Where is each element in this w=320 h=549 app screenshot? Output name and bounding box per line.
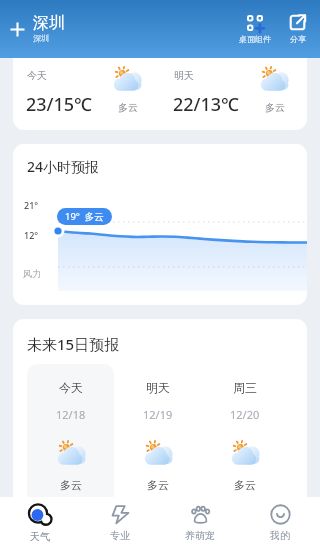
staticText: 22/13℃	[173, 92, 240, 117]
staticText: 深圳	[33, 13, 65, 33]
staticText: 天气	[30, 530, 50, 543]
button[interactable]: 19° 多云	[57, 208, 112, 225]
staticText: 今天	[59, 380, 83, 395]
staticText: 专业	[110, 529, 130, 542]
button[interactable]: 天气	[0, 497, 80, 549]
staticText: 明天	[146, 380, 170, 395]
staticText: 12/18	[56, 407, 86, 422]
button[interactable]: 我的	[240, 497, 320, 549]
button[interactable]: 今天	[27, 364, 114, 497]
staticText: 我的	[270, 529, 290, 542]
button[interactable]: 分享	[287, 11, 308, 47]
staticText: 21°	[24, 199, 39, 211]
staticText: 多云	[234, 478, 256, 492]
staticText: 风力	[23, 268, 41, 279]
staticText: 未来15日预报	[27, 334, 120, 354]
staticText: 多云	[60, 478, 82, 492]
button[interactable]: 周三	[201, 364, 288, 497]
staticText: 深圳	[33, 33, 49, 43]
staticText: 分享	[290, 34, 306, 44]
button[interactable]: 桌面组件	[237, 12, 273, 47]
staticText: 19° 多云	[65, 210, 104, 223]
staticText: 周三	[233, 380, 257, 395]
staticText: 12/19	[143, 407, 173, 422]
staticText: 12°	[24, 229, 39, 241]
staticText: 24小时预报	[27, 157, 100, 176]
staticText: 12/20	[230, 407, 260, 422]
staticText: 23/15℃	[26, 92, 93, 117]
staticText: 桌面组件	[239, 34, 271, 44]
staticText: 多云	[265, 101, 285, 114]
button[interactable]: 养萌宠	[160, 497, 240, 549]
button[interactable]: 明天	[160, 58, 307, 130]
staticText: 养萌宠	[185, 529, 215, 542]
staticText: 今天	[27, 69, 47, 82]
button[interactable]: Add city	[5, 17, 29, 41]
button[interactable]: 明天	[114, 364, 201, 497]
staticText: 多云	[147, 478, 169, 492]
staticText: 明天	[174, 69, 194, 82]
button[interactable]: 专业	[80, 497, 160, 549]
button[interactable]: 今天	[13, 58, 160, 130]
staticText: 多云	[118, 101, 138, 114]
